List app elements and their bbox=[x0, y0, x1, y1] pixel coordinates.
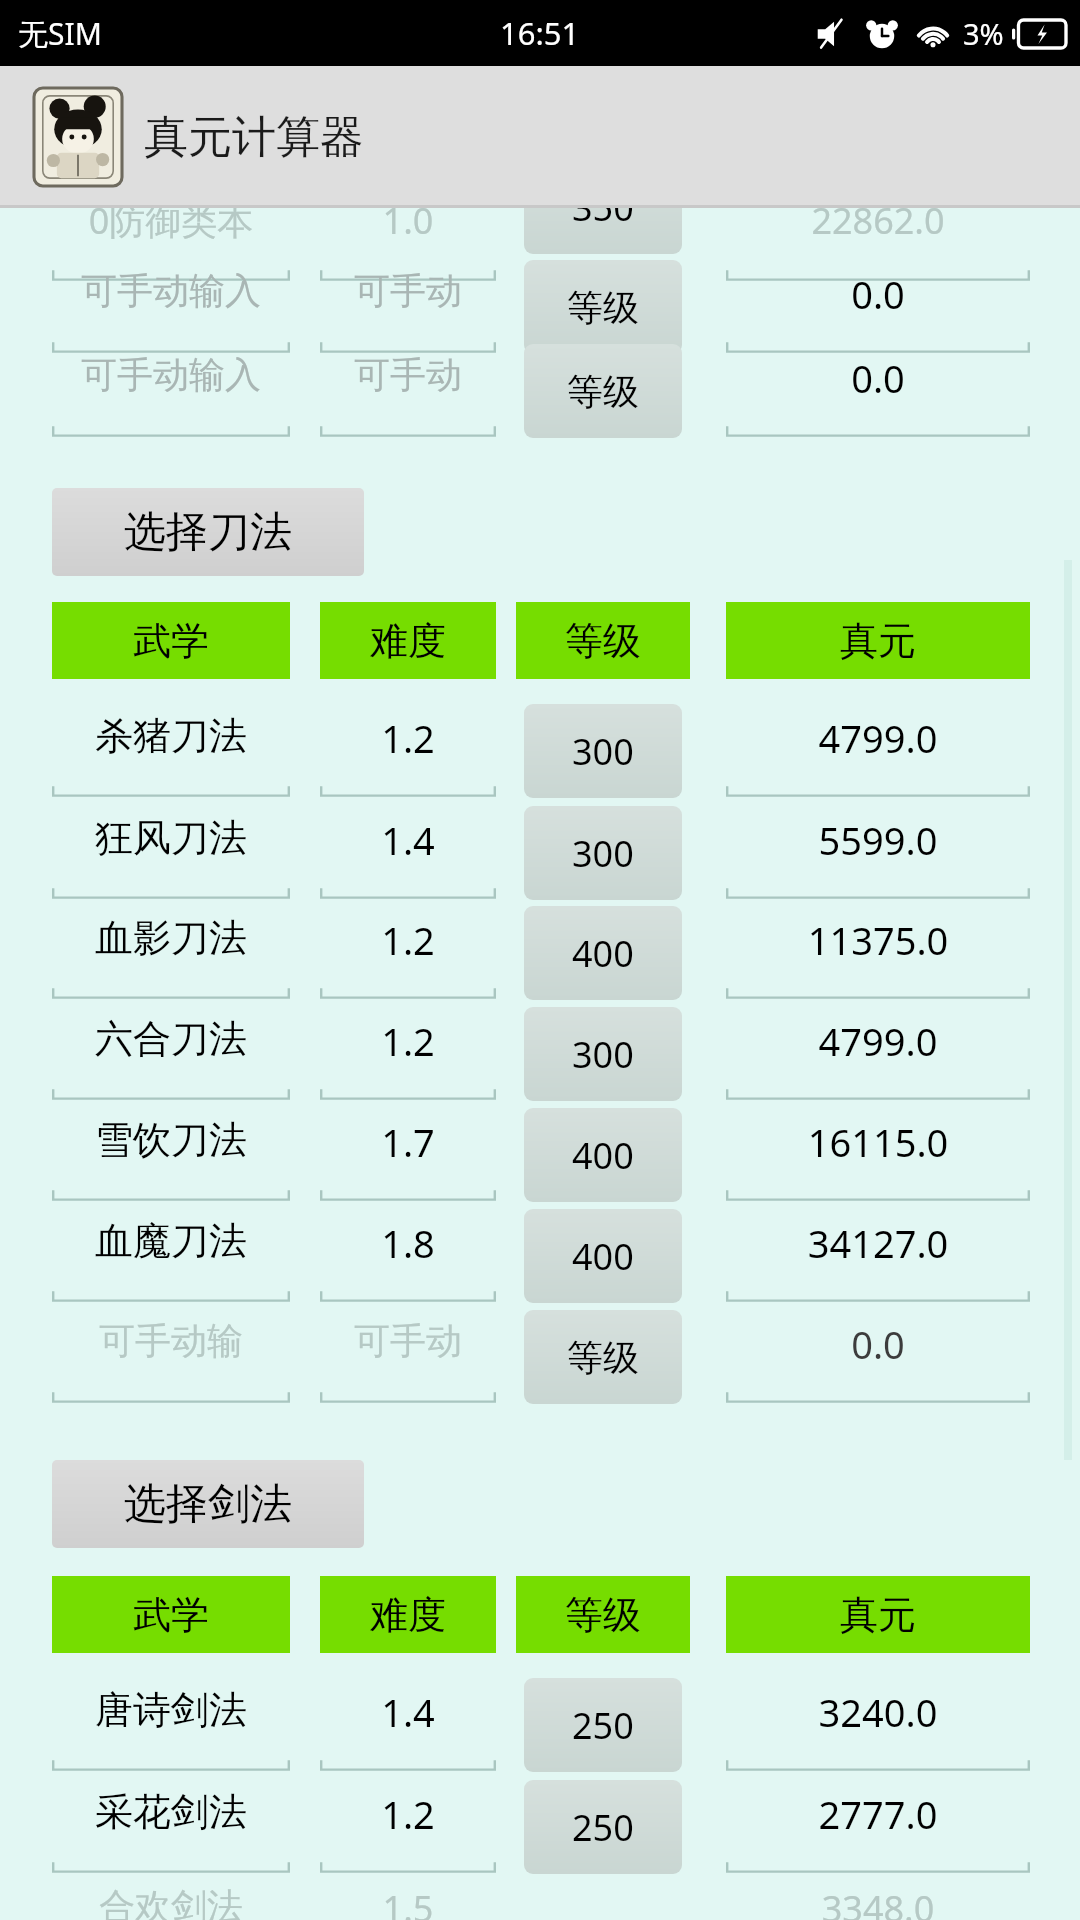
button[interactable]: 可手动 bbox=[320, 1318, 496, 1404]
button[interactable]: 0.0 bbox=[726, 1318, 1030, 1404]
staticText: 六合刀法 bbox=[52, 1015, 290, 1063]
button[interactable]: 杀猪刀法 bbox=[52, 712, 290, 798]
button[interactable]: 350 bbox=[524, 160, 682, 254]
button[interactable]: 可手动输 bbox=[52, 1318, 290, 1404]
staticText: 武学 bbox=[133, 617, 209, 665]
staticText: 等级 bbox=[567, 285, 639, 330]
button[interactable]: 400 bbox=[524, 1209, 682, 1303]
button[interactable]: 250 bbox=[524, 1678, 682, 1772]
staticText: 5599.0 bbox=[726, 814, 1030, 866]
button[interactable]: 1.0 bbox=[320, 196, 496, 282]
staticText: 可手动输 bbox=[52, 1318, 290, 1363]
button[interactable]: 1.5 bbox=[320, 1884, 496, 1920]
button[interactable]: 4799.0 bbox=[726, 712, 1030, 798]
button[interactable]: 选择刀法 bbox=[52, 488, 364, 576]
staticText: 3240.0 bbox=[726, 1686, 1030, 1738]
button[interactable]: 真元 bbox=[726, 602, 1030, 679]
staticText: 雪饮刀法 bbox=[52, 1116, 290, 1164]
button[interactable]: 300 bbox=[524, 704, 682, 798]
staticText: 2777.0 bbox=[726, 1788, 1030, 1840]
button[interactable]: 1.8 bbox=[320, 1217, 496, 1303]
staticText: 可手动输入 bbox=[52, 268, 290, 313]
button[interactable]: 3240.0 bbox=[726, 1686, 1030, 1772]
button[interactable]: 3348.0 bbox=[726, 1884, 1030, 1920]
button[interactable]: 等级 bbox=[524, 260, 682, 354]
staticText: 无SIM bbox=[18, 13, 102, 54]
button[interactable]: 难度 bbox=[320, 1576, 496, 1653]
button[interactable]: 1.2 bbox=[320, 712, 496, 798]
button[interactable]: 可手动输入 bbox=[52, 268, 290, 354]
button[interactable]: 0.0 bbox=[726, 268, 1030, 354]
staticText: 1.2 bbox=[320, 1015, 496, 1067]
button[interactable]: 难度 bbox=[320, 602, 496, 679]
staticText: 300 bbox=[572, 1030, 634, 1079]
button[interactable]: 采花剑法 bbox=[52, 1788, 290, 1874]
button[interactable]: 武学 bbox=[52, 602, 290, 679]
staticText: 血魔刀法 bbox=[52, 1217, 290, 1265]
button[interactable]: 选择剑法 bbox=[52, 1460, 364, 1548]
staticText: 选择剑法 bbox=[124, 1478, 292, 1531]
button[interactable]: 合欢剑法 bbox=[52, 1884, 290, 1920]
button[interactable]: 等级 bbox=[524, 1310, 682, 1404]
button[interactable]: 1.2 bbox=[320, 914, 496, 1000]
button[interactable]: 300 bbox=[524, 1007, 682, 1101]
staticText: 可手动 bbox=[320, 352, 496, 397]
staticText: 16:51 bbox=[500, 12, 580, 54]
button[interactable]: 0防御类本 bbox=[52, 196, 290, 282]
staticText: 400 bbox=[572, 1232, 634, 1281]
button[interactable]: 1.4 bbox=[320, 814, 496, 900]
button[interactable]: 0.0 bbox=[726, 352, 1030, 438]
staticText: 唐诗剑法 bbox=[52, 1686, 290, 1734]
staticText: 真元计算器 bbox=[144, 110, 364, 165]
staticText: 0防御类本 bbox=[52, 196, 290, 245]
staticText: 22862.0 bbox=[726, 196, 1030, 245]
button[interactable]: 1.2 bbox=[320, 1015, 496, 1101]
button[interactable]: 1.7 bbox=[320, 1116, 496, 1202]
staticText: 0.0 bbox=[726, 1318, 1030, 1370]
button[interactable]: 雪饮刀法 bbox=[52, 1116, 290, 1202]
staticText: 杀猪刀法 bbox=[52, 712, 290, 760]
button[interactable]: 11375.0 bbox=[726, 914, 1030, 1000]
staticText: 4799.0 bbox=[726, 712, 1030, 764]
staticText: 等级 bbox=[565, 1591, 641, 1639]
button[interactable]: 5599.0 bbox=[726, 814, 1030, 900]
button[interactable]: 22862.0 bbox=[726, 196, 1030, 282]
button[interactable]: 4799.0 bbox=[726, 1015, 1030, 1101]
button[interactable]: 可手动 bbox=[320, 352, 496, 438]
staticText: 1.4 bbox=[320, 1686, 496, 1738]
staticText: 血影刀法 bbox=[52, 914, 290, 962]
staticText: 等级 bbox=[567, 369, 639, 414]
staticText: 合欢剑法 bbox=[52, 1884, 290, 1920]
button[interactable]: 六合刀法 bbox=[52, 1015, 290, 1101]
button[interactable]: 400 bbox=[524, 1108, 682, 1202]
button[interactable]: 等级 bbox=[516, 1576, 690, 1653]
button[interactable]: 250 bbox=[524, 1780, 682, 1874]
button[interactable]: 真元 bbox=[726, 1576, 1030, 1653]
button[interactable]: 狂风刀法 bbox=[52, 814, 290, 900]
button[interactable]: 34127.0 bbox=[726, 1217, 1030, 1303]
button[interactable]: 1.4 bbox=[320, 1686, 496, 1772]
button[interactable]: 血影刀法 bbox=[52, 914, 290, 1000]
button[interactable]: 可手动输入 bbox=[52, 352, 290, 438]
staticText: 可手动输入 bbox=[52, 352, 290, 397]
button[interactable]: 2777.0 bbox=[726, 1788, 1030, 1874]
button[interactable]: 武学 bbox=[52, 1576, 290, 1653]
button[interactable]: 唐诗剑法 bbox=[52, 1686, 290, 1772]
button[interactable]: 16115.0 bbox=[726, 1116, 1030, 1202]
staticText: 300 bbox=[572, 829, 634, 878]
staticText: 选择刀法 bbox=[124, 506, 292, 559]
staticText: 11375.0 bbox=[726, 914, 1030, 966]
button[interactable]: 300 bbox=[524, 806, 682, 900]
button[interactable]: 等级 bbox=[524, 344, 682, 438]
staticText: 1.2 bbox=[320, 1788, 496, 1840]
button[interactable]: 等级 bbox=[516, 602, 690, 679]
button[interactable]: 可手动 bbox=[320, 268, 496, 354]
staticText: 狂风刀法 bbox=[52, 814, 290, 862]
staticText: 0.0 bbox=[726, 352, 1030, 404]
staticText: 0.0 bbox=[726, 268, 1030, 320]
button[interactable]: 1.2 bbox=[320, 1788, 496, 1874]
staticText: 可手动 bbox=[320, 268, 496, 313]
staticText: 1.7 bbox=[320, 1116, 496, 1168]
button[interactable]: 400 bbox=[524, 906, 682, 1000]
button[interactable]: 血魔刀法 bbox=[52, 1217, 290, 1303]
